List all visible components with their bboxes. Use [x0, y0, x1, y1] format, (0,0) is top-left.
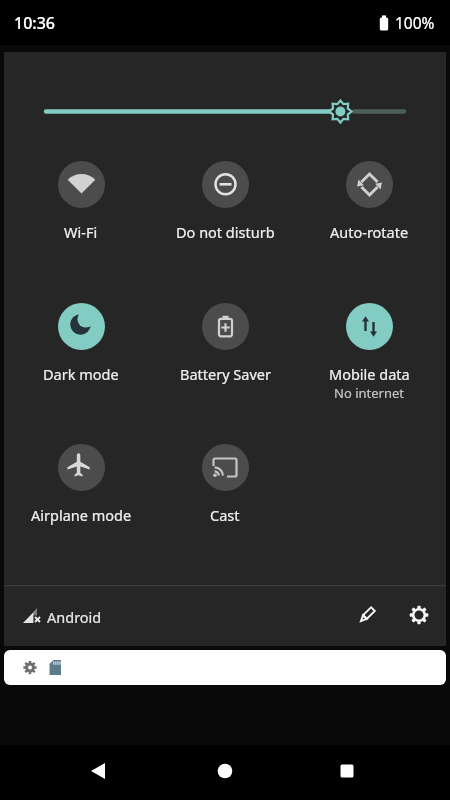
button[interactable]: Cast — [155, 444, 295, 525]
button[interactable] — [4, 650, 446, 685]
staticText: Airplane mode — [31, 505, 132, 525]
button[interactable]: Auto-rotate — [299, 161, 439, 242]
button[interactable] — [40, 96, 412, 128]
staticText: Cast — [210, 505, 240, 525]
button[interactable] — [347, 595, 387, 635]
button[interactable]: Do not disturb — [155, 161, 295, 242]
staticText: Mobile data — [329, 364, 410, 384]
button[interactable]: Wi-Fi — [11, 161, 151, 242]
staticText: Android — [47, 607, 102, 627]
button[interactable] — [323, 747, 371, 795]
staticText: Do not disturb — [176, 222, 275, 242]
button[interactable]: Dark mode — [11, 303, 151, 384]
staticText: 100% — [395, 12, 435, 33]
staticText: Wi-Fi — [64, 222, 98, 242]
button[interactable]: Battery Saver — [155, 303, 295, 384]
staticText: Dark mode — [43, 364, 119, 384]
button[interactable] — [399, 595, 439, 635]
staticText: Battery Saver — [180, 364, 271, 384]
button[interactable]: Airplane mode — [11, 444, 151, 525]
staticText: Auto-rotate — [330, 222, 409, 242]
button[interactable] — [74, 747, 122, 795]
button[interactable]: Mobile data — [299, 303, 439, 402]
button[interactable] — [201, 747, 249, 795]
staticText: No internet — [334, 384, 404, 402]
staticText: 10:36 — [14, 12, 55, 34]
